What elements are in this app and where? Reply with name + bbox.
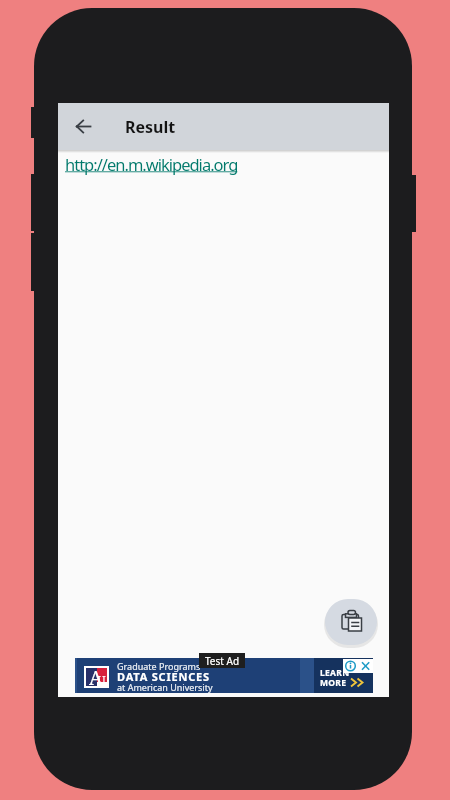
button[interactable]: http://en.m.wikipedia.org: [65, 153, 238, 175]
staticText: at American University: [117, 681, 213, 693]
button[interactable]: [325, 599, 377, 645]
staticText: Test Ad: [205, 654, 240, 668]
staticText: U: [97, 672, 106, 688]
staticText: DATA SCIENCES: [117, 669, 210, 684]
button[interactable]: A: [75, 658, 373, 693]
staticText: MORE: [320, 677, 347, 689]
button[interactable]: [58, 103, 109, 150]
staticText: Graduate Programs: [117, 660, 201, 672]
staticText: A: [89, 665, 103, 687]
staticText: Result: [125, 116, 176, 138]
staticText: LEARN: [320, 667, 350, 679]
